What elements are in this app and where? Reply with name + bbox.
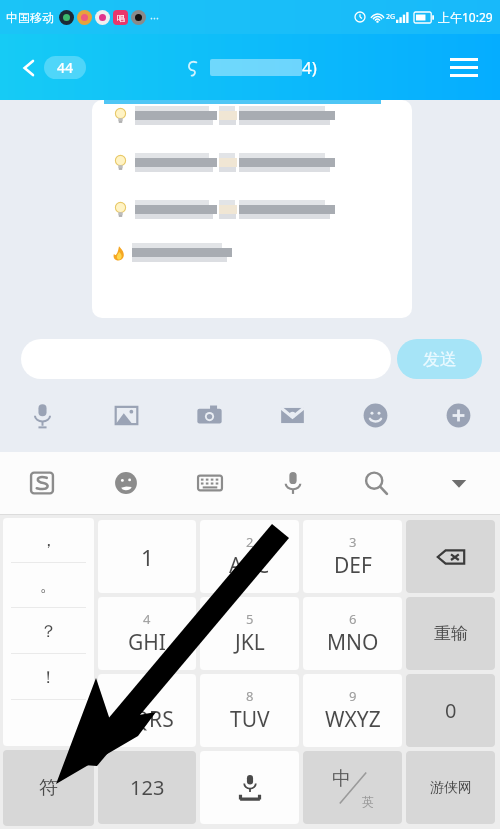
button[interactable]: Message input [21,339,391,379]
staticText: PQRS [120,705,174,734]
button[interactable]: Voice input [251,452,334,514]
staticText: 0 [445,697,457,724]
staticText: ， [40,530,57,551]
button[interactable]: Back, 44 unread [14,52,90,83]
staticText: 1 [141,542,154,572]
staticText: 123 [130,774,165,801]
button[interactable]: 6 [303,597,402,670]
staticText: 重输 [434,623,468,644]
staticText: 英 [362,794,374,809]
button[interactable]: Search [334,452,417,514]
staticText: 发送 [423,349,457,370]
button[interactable]: Camera [168,379,251,452]
button[interactable]: ， [3,518,94,563]
button[interactable]: Collapse [417,452,500,514]
button[interactable]: 8 [200,674,299,747]
staticText: ？ [40,621,57,642]
staticText: 44 [57,58,74,77]
button[interactable]: Space or voice [200,751,299,824]
button[interactable]: Delete [406,520,495,593]
button[interactable]: 0 [406,674,495,747]
staticText: 中 [332,767,351,791]
button[interactable]: Keyboard [168,452,251,514]
staticText: 4) [302,56,317,79]
staticText: JKL [235,628,265,657]
button[interactable]: 3 [303,520,402,593]
staticText: 2 [246,533,254,551]
button[interactable]: Emoji [334,379,417,452]
staticText: 上午10:29 [438,9,493,25]
staticText: 5 [246,610,254,628]
staticText: 符 [39,776,58,800]
staticText: 4 [143,610,151,628]
button[interactable]: 。 [3,563,94,608]
button[interactable] [3,700,94,746]
button[interactable]: Emoji [84,452,168,514]
button[interactable]: 7 [98,674,196,747]
button[interactable]: Menu [446,54,482,81]
staticText: DEF [334,551,372,580]
button[interactable]: Sogou [0,452,84,514]
button[interactable]: Enter [406,751,495,824]
staticText: 9 [349,687,357,705]
staticText: 8 [246,687,254,705]
button[interactable]: 符 [3,750,94,826]
staticText: MNO [327,628,379,657]
staticText: GHI [128,628,166,657]
staticText: ABC [229,551,270,580]
staticText: 游侠网 [430,779,472,797]
staticText: 唱 [117,13,125,23]
staticText: 7 [143,687,151,705]
staticText: 。 [40,575,57,596]
button[interactable]: ？ [3,608,94,654]
button[interactable]: Chinese English toggle [303,751,402,824]
staticText: ！ [40,667,57,688]
staticText: 6 [349,610,357,628]
button[interactable]: Envelope [251,379,334,452]
button[interactable]: 4 [98,597,196,670]
button[interactable]: 发送 [397,339,482,379]
staticText: ··· [150,10,159,25]
button[interactable]: 2 [200,520,299,593]
button[interactable]: Voice [0,379,84,452]
button[interactable]: Gallery [84,379,168,452]
staticText: 2G [386,12,396,22]
button[interactable]: 9 [303,674,402,747]
button[interactable]: 123 [98,751,196,824]
staticText: 中国移动 [6,10,54,25]
button[interactable]: ！ [3,654,94,700]
staticText: TUV [230,705,270,734]
button[interactable]: More [417,379,500,452]
button[interactable]: 5 [200,597,299,670]
button[interactable]: 重输 [406,597,495,670]
staticText: 3 [349,533,357,551]
staticText: WXYZ [325,705,381,734]
button[interactable]: 1 [98,520,196,593]
